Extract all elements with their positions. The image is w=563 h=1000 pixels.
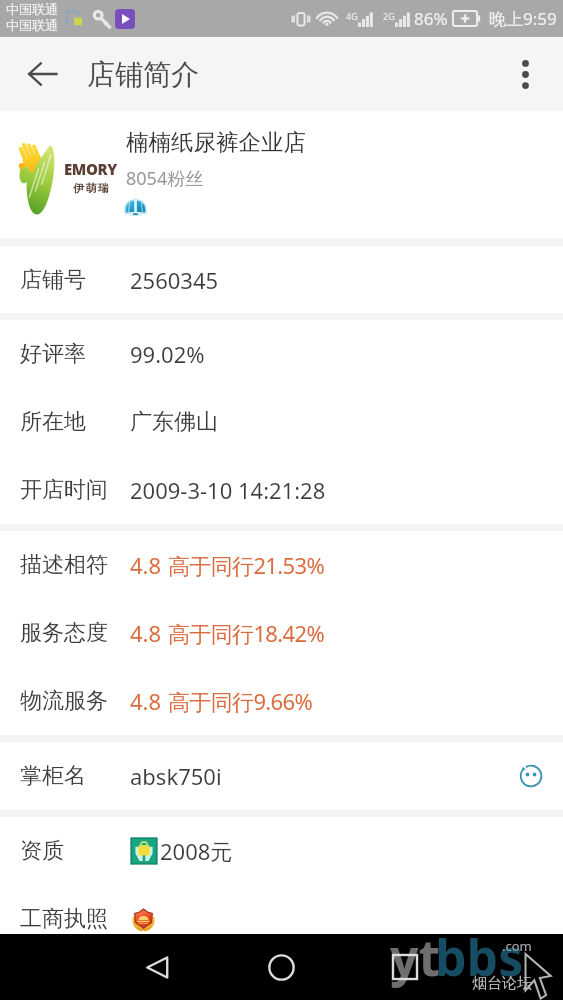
staticText: 2G: [383, 10, 395, 22]
staticText: 高于同行21.53%: [168, 550, 325, 580]
staticText: 8054粉丝: [126, 166, 204, 191]
button[interactable]: 物流服务: [0, 667, 563, 735]
staticText: yt: [390, 923, 441, 991]
button[interactable]: EMORY: [0, 111, 563, 238]
staticText: 4.8: [130, 686, 162, 716]
button[interactable]: 资质: [0, 817, 563, 885]
button[interactable]: 好评率: [0, 320, 563, 388]
button[interactable]: 所在地: [0, 388, 563, 456]
button[interactable]: Back: [5, 37, 79, 111]
staticText: 2008元: [160, 836, 233, 866]
staticText: 楠楠纸尿裤企业店: [126, 128, 306, 156]
staticText: absk750i: [130, 761, 222, 791]
staticText: 工商执照: [20, 905, 108, 933]
staticText: 物流服务: [20, 687, 108, 715]
button[interactable]: 掌柜名: [0, 742, 563, 810]
staticText: 2560345: [130, 265, 219, 295]
staticText: 99.02%: [130, 339, 205, 369]
staticText: 4.8: [130, 618, 162, 648]
button[interactable]: Recent apps: [373, 935, 437, 999]
staticText: EMORY: [64, 159, 117, 179]
staticText: 烟台论坛: [472, 974, 532, 993]
staticText: 好评率: [20, 340, 86, 368]
staticText: 店铺号: [20, 266, 86, 294]
button[interactable]: 店铺号: [0, 246, 563, 313]
button[interactable]: Back: [125, 935, 189, 999]
button[interactable]: 工商执照: [0, 885, 563, 953]
button[interactable]: More options: [488, 37, 562, 111]
staticText: .com: [502, 937, 532, 955]
staticText: bbs: [435, 923, 524, 991]
staticText: 资质: [20, 837, 64, 865]
staticText: 描述相符: [20, 551, 108, 579]
staticText: 4.8: [130, 550, 162, 580]
button[interactable]: Home: [249, 935, 313, 999]
staticText: 86%: [414, 7, 448, 30]
staticText: 开店时间: [20, 476, 108, 504]
staticText: 服务态度: [20, 619, 108, 647]
button[interactable]: 服务态度: [0, 599, 563, 667]
staticText: 伊萌瑞: [73, 181, 109, 195]
staticText: 中国联通: [6, 1, 58, 17]
staticText: 高于同行9.66%: [168, 686, 313, 716]
staticText: 2009-3-10 14:21:28: [130, 475, 326, 505]
staticText: 掌柜名: [20, 762, 86, 790]
staticText: 高于同行18.42%: [168, 618, 325, 648]
staticText: 广东佛山: [130, 408, 218, 436]
button[interactable]: 开店时间: [0, 456, 563, 524]
staticText: 晚上9:59: [489, 7, 557, 30]
button[interactable]: 描述相符: [0, 531, 563, 599]
button[interactable]: Chat with seller: [511, 756, 551, 796]
staticText: 4G: [346, 10, 358, 22]
staticText: 所在地: [20, 408, 86, 436]
staticText: 店铺简介: [87, 57, 199, 92]
staticText: 中国联通: [6, 17, 58, 33]
